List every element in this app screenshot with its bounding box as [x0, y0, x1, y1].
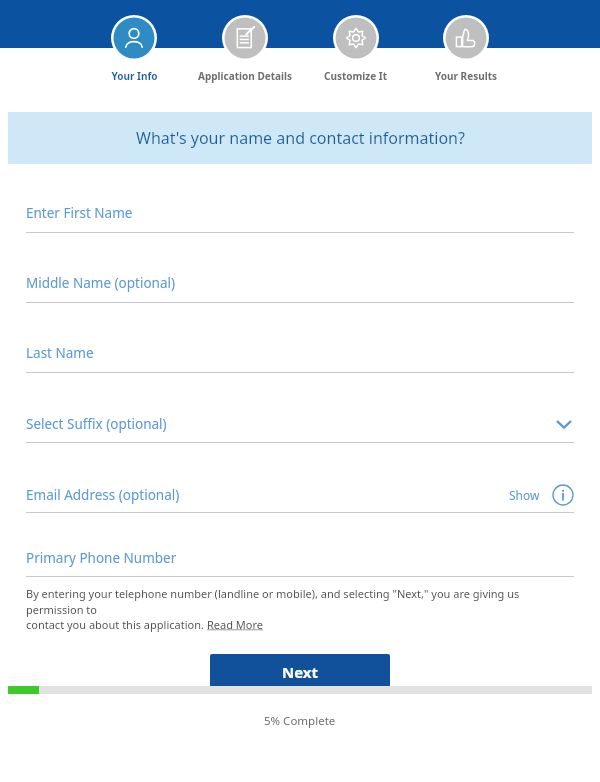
staticText: 5% Complete — [264, 713, 336, 729]
staticText: By entering your telephone number (landl… — [26, 586, 574, 617]
button[interactable]: Your Info — [79, 15, 189, 83]
button[interactable]: Customize It — [300, 15, 411, 83]
staticText: Middle Name (optional) — [26, 274, 176, 292]
button[interactable]: Your Results — [411, 15, 521, 83]
button[interactable]: Application Details — [189, 15, 300, 83]
staticText: Email Address (optional) — [26, 486, 180, 504]
staticText: Last Name — [26, 344, 94, 362]
button[interactable]: Middle Name (optional) — [0, 258, 600, 328]
button[interactable]: Show — [509, 487, 540, 503]
staticText: Next — [282, 662, 319, 682]
button[interactable]: Primary Phone Number — [0, 538, 600, 577]
staticText: Select Suffix (optional) — [26, 415, 167, 433]
staticText: contact you about this application. — [26, 617, 207, 632]
button[interactable]: Email Address (optional) — [0, 468, 600, 538]
other: Open suffix list — [554, 414, 574, 434]
button[interactable]: Next — [210, 654, 390, 690]
button[interactable]: Read More — [207, 617, 264, 632]
staticText: What's your name and contact information… — [136, 127, 465, 149]
button[interactable]: Select Suffix (optional) — [0, 398, 600, 468]
staticText: Your Results — [435, 69, 497, 83]
button[interactable]: Last Name — [0, 328, 600, 398]
staticText: Your Info — [111, 69, 158, 83]
staticText: Primary Phone Number — [26, 549, 177, 567]
button[interactable]: More information — [552, 484, 574, 506]
staticText: Application Details — [198, 69, 292, 83]
button[interactable]: Enter First Name — [0, 188, 600, 258]
staticText: Customize It — [324, 69, 387, 83]
staticText: Enter First Name — [26, 204, 133, 222]
